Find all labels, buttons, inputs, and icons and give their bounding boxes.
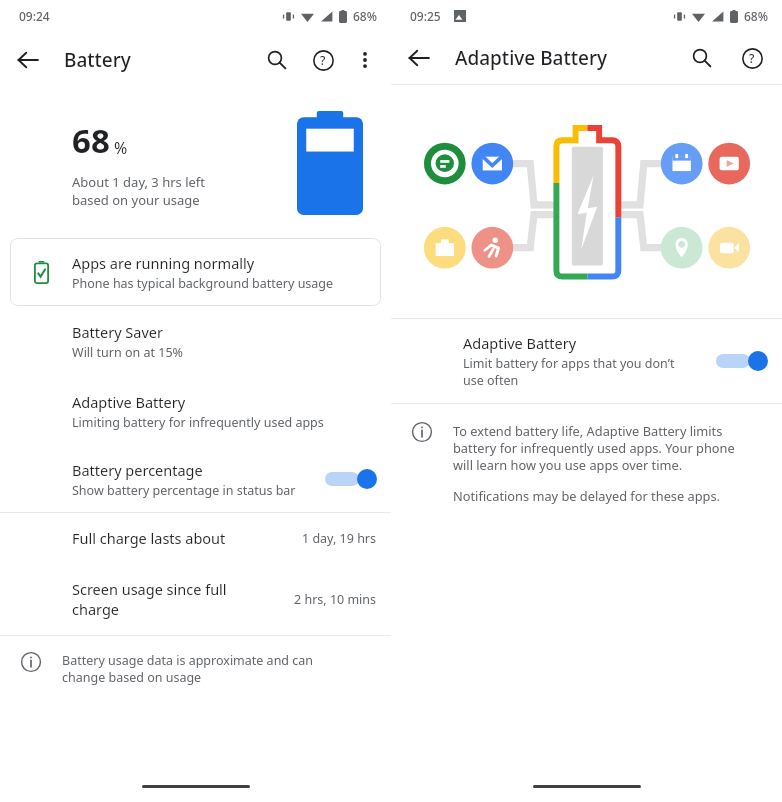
- staticText: Battery percentage: [72, 460, 203, 480]
- staticText: Phone has typical background battery usa…: [72, 275, 334, 292]
- button[interactable]: Help: [303, 40, 343, 80]
- staticText: ?: [749, 50, 755, 66]
- button[interactable]: Battery Saver: [0, 306, 391, 376]
- button[interactable]: Full charge lasts about: [0, 513, 391, 563]
- staticText: based on your usage: [72, 191, 200, 209]
- button[interactable]: Battery percentage: [0, 446, 391, 512]
- staticText: Adaptive Battery: [455, 45, 607, 71]
- staticText: 68%: [353, 8, 377, 24]
- button[interactable]: Adaptive Battery: [0, 376, 391, 446]
- staticText: Adaptive Battery: [72, 392, 186, 412]
- staticText: use often: [463, 372, 519, 389]
- staticText: Adaptive Battery: [463, 333, 577, 353]
- button[interactable]: [325, 462, 377, 496]
- button[interactable]: Adaptive Battery: [391, 319, 782, 403]
- button[interactable]: Help: [732, 38, 772, 78]
- button[interactable]: [716, 344, 768, 378]
- staticText: Notifications may be delayed for these a…: [453, 487, 721, 504]
- button[interactable]: Back: [399, 38, 439, 78]
- staticText: Screen usage since full charge: [72, 579, 274, 619]
- staticText: Will turn on at 15%: [72, 344, 183, 361]
- staticText: Battery Saver: [72, 322, 163, 342]
- button[interactable]: Apps are running normally: [10, 238, 381, 306]
- staticText: Apps are running normally: [72, 253, 255, 273]
- button[interactable]: Search: [682, 38, 722, 78]
- button[interactable]: Screen usage since full charge: [0, 563, 391, 635]
- staticText: 09:24: [19, 8, 50, 24]
- staticText: ?: [320, 52, 326, 68]
- staticText: 1 day, 19 hrs: [302, 530, 377, 547]
- staticText: 68: [72, 118, 110, 163]
- staticText: will learn how you use apps over time.: [453, 456, 683, 473]
- button[interactable]: Search: [257, 40, 297, 80]
- staticText: Limit battery for apps that you don’t: [463, 355, 675, 372]
- staticText: battery for infrequently used apps. Your…: [453, 439, 735, 456]
- staticText: 68%: [744, 8, 768, 24]
- staticText: 09:25: [410, 8, 441, 24]
- staticText: Limiting battery for infrequently used a…: [72, 414, 324, 431]
- staticText: Battery usage data is approximate and ca…: [62, 652, 314, 669]
- staticText: Show battery percentage in status bar: [72, 482, 296, 499]
- staticText: Full charge lasts about: [72, 528, 302, 548]
- staticText: %: [114, 137, 128, 159]
- staticText: Battery: [64, 47, 131, 73]
- button[interactable]: Back: [8, 40, 48, 80]
- button[interactable]: More options: [345, 40, 385, 80]
- staticText: To extend battery life, Adaptive Battery…: [453, 422, 723, 439]
- staticText: 2 hrs, 10 mins: [294, 591, 377, 608]
- staticText: About 1 day, 3 hrs left: [72, 173, 206, 191]
- staticText: change based on usage: [62, 669, 202, 686]
